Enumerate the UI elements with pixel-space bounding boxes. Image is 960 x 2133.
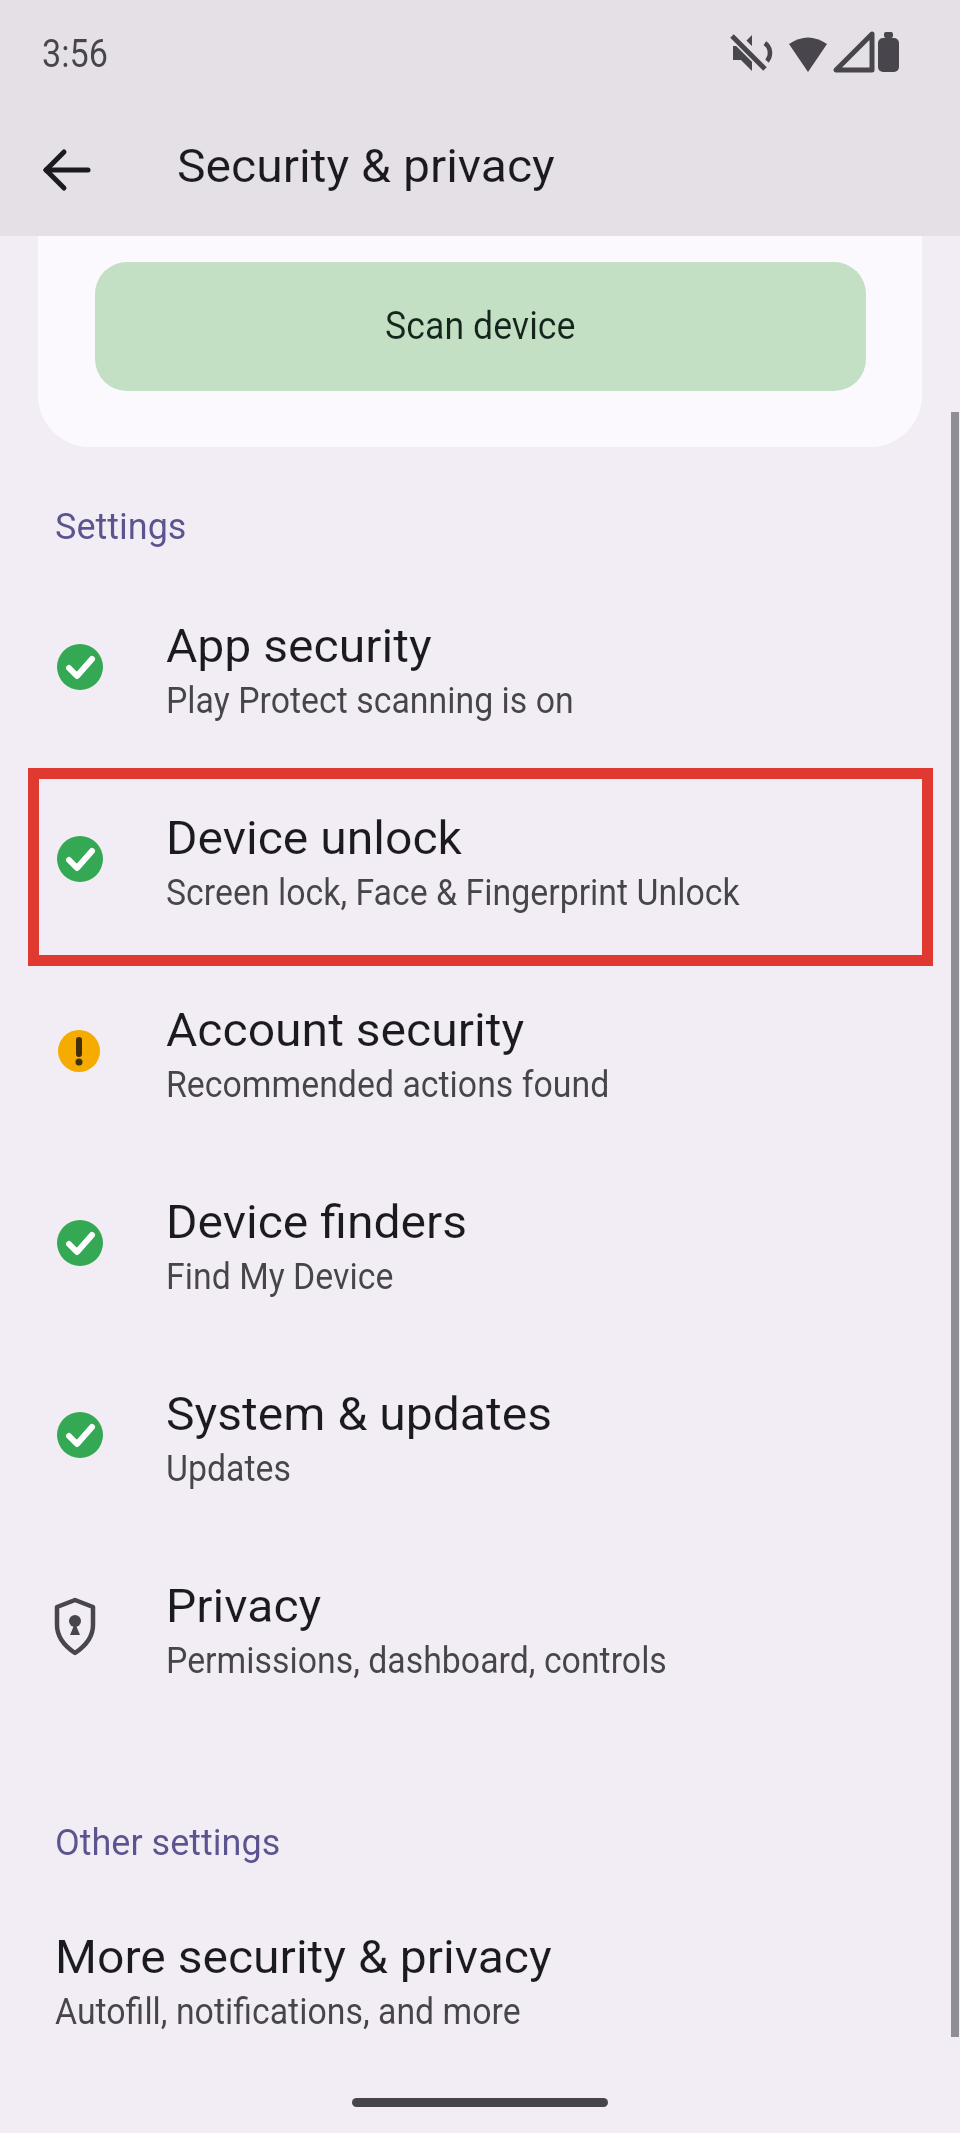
staticText: Recommended actions found: [166, 1063, 610, 1106]
button[interactable]: App security: [0, 571, 960, 763]
staticText: Privacy: [166, 1579, 322, 1633]
staticText: Settings: [55, 506, 187, 548]
staticText: Permissions, dashboard, controls: [166, 1639, 667, 1682]
staticText: App security: [166, 619, 432, 673]
staticText: Account security: [166, 1003, 524, 1057]
button[interactable]: Device unlock: [0, 763, 960, 955]
staticText: Updates: [166, 1447, 291, 1490]
button[interactable]: [31, 134, 103, 206]
staticText: Other settings: [55, 1822, 281, 1864]
button[interactable]: Account security: [0, 955, 960, 1147]
button[interactable]: System & updates: [0, 1339, 960, 1531]
button[interactable]: More security & privacy: [0, 1882, 960, 2074]
staticText: Device finders: [166, 1195, 468, 1249]
button[interactable]: Privacy: [0, 1531, 960, 1723]
staticText: 3:56: [42, 32, 109, 77]
staticText: Security & privacy: [177, 139, 555, 193]
button[interactable]: Scan device: [95, 262, 866, 391]
staticText: Device unlock: [166, 811, 463, 865]
staticText: Screen lock, Face & Fingerprint Unlock: [166, 871, 740, 914]
staticText: Autofill, notifications, and more: [55, 1990, 521, 2033]
staticText: System & updates: [166, 1387, 553, 1441]
staticText: Play Protect scanning is on: [166, 679, 574, 722]
staticText: Scan device: [385, 304, 576, 349]
button[interactable]: Device finders: [0, 1147, 960, 1339]
staticText: Find My Device: [166, 1255, 394, 1298]
staticText: More security & privacy: [55, 1930, 552, 1984]
